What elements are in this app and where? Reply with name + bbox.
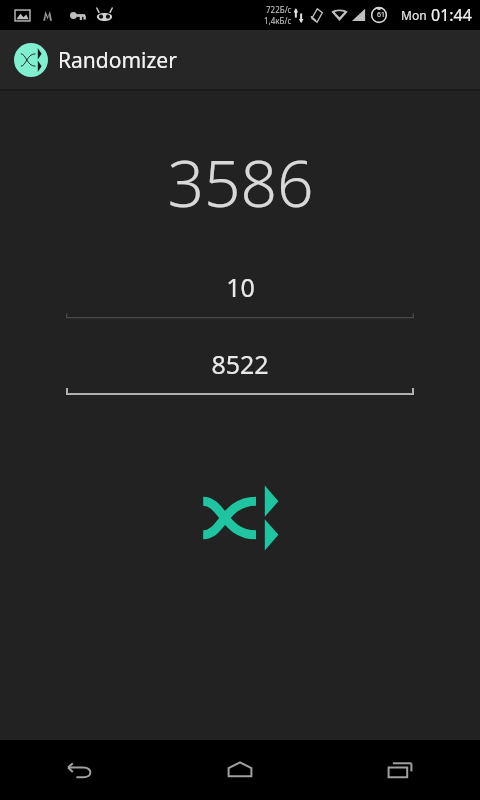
button[interactable]: Home — [160, 740, 320, 800]
button[interactable]: 10 — [66, 270, 414, 319]
button[interactable]: 8522 — [66, 347, 414, 396]
staticText: 1,4кБ/с — [264, 15, 292, 26]
staticText: 8522 — [211, 347, 269, 381]
staticText: 01:44 — [431, 4, 472, 26]
staticText: Mon — [401, 7, 427, 23]
button[interactable]: Back — [0, 740, 160, 800]
staticText: 722Б/с — [266, 4, 292, 15]
button[interactable]: Shuffle — [192, 470, 288, 566]
staticText: Randomizer — [58, 46, 177, 75]
staticText: 10 — [226, 270, 255, 304]
staticText: 61 — [377, 10, 386, 20]
button[interactable]: Recent apps — [320, 740, 480, 800]
staticText: 3586 — [167, 139, 314, 226]
